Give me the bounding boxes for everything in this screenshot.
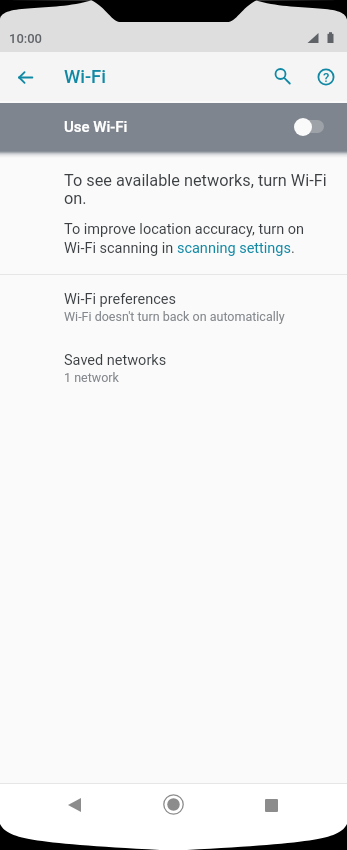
button[interactable] [0,103,347,151]
button[interactable]: Wi-Fi preferences [0,283,347,333]
button[interactable]: Back [5,57,45,97]
staticText: To improve location accuracy, turn on Wi… [64,221,314,256]
button[interactable]: Help [306,57,346,97]
button[interactable]: Back [54,785,94,825]
staticText: ? [323,70,330,85]
staticText: 10:00 [9,31,43,46]
staticText: To see available networks, turn Wi-Fi on… [64,171,332,208]
button[interactable]: Recents [251,785,291,825]
button[interactable]: Saved networks [0,344,347,394]
button[interactable]: Home [153,784,193,824]
staticText: Wi-Fi [64,66,107,88]
staticText: Wi-Fi doesn't turn back on automatically [64,309,285,324]
staticText: Use Wi-Fi [64,118,128,136]
button[interactable]: Search [263,57,303,97]
staticText: 1 network [64,370,119,385]
staticText: Wi-Fi preferences [64,291,176,308]
staticText: Saved networks [64,352,167,369]
